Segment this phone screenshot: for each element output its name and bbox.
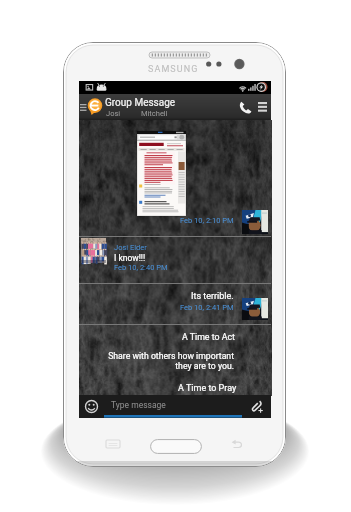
button[interactable]: Call [233, 94, 258, 120]
button[interactable]: App logo [85, 97, 104, 116]
staticText: Josi [106, 109, 121, 118]
staticText: I know!!! [114, 253, 146, 263]
staticText: Its terrible. [191, 291, 234, 302]
button[interactable] [81, 238, 106, 263]
staticText: A Time to Pray [178, 383, 237, 394]
button[interactable]: More options [254, 94, 271, 120]
staticText: Josi Elder [114, 243, 147, 252]
staticText: Mitchell [141, 109, 168, 118]
button[interactable]: Insert emoticon [79, 395, 104, 418]
staticText: Share with others how important they are… [91, 351, 234, 371]
staticText: Feb 10, 2:41 PM [180, 303, 234, 312]
button[interactable]: Type message [104, 395, 242, 418]
button[interactable]: Navigation menu [79, 98, 88, 116]
staticText: Type message [111, 400, 166, 410]
staticText: Feb 10, 2:40 PM [114, 263, 168, 272]
button[interactable]: Attach file [242, 395, 271, 418]
staticText: Group Message [105, 97, 176, 109]
button[interactable]: Feb 10, 2:10 PM [180, 216, 234, 225]
staticText: A Time to Act [182, 332, 235, 342]
staticText: SAMSUNG [148, 64, 199, 75]
